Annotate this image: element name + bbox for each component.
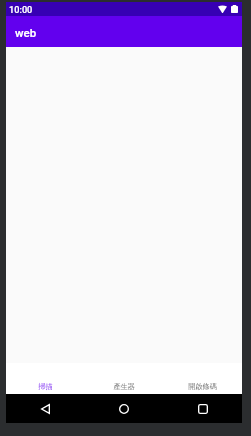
staticText: 10:00 bbox=[9, 4, 33, 15]
staticText: 開啟條碼 bbox=[188, 382, 217, 391]
button[interactable]: 掃描 bbox=[6, 363, 84, 394]
staticText: 掃描 bbox=[38, 382, 53, 391]
button[interactable]: Home bbox=[84, 394, 163, 423]
button[interactable]: 產生器 bbox=[84, 363, 163, 394]
button[interactable]: 開啟條碼 bbox=[163, 363, 242, 394]
staticText: 產生器 bbox=[113, 382, 135, 391]
staticText: web bbox=[15, 26, 37, 39]
button[interactable]: Recent apps bbox=[163, 394, 242, 423]
button[interactable]: Back bbox=[6, 394, 84, 423]
